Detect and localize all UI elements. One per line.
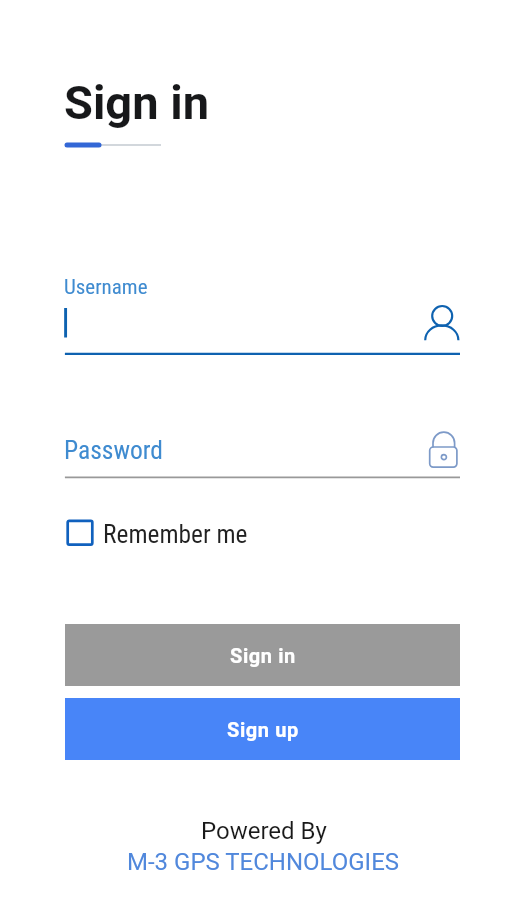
button[interactable]: M-3 GPS TECHNOLOGIES (127, 848, 400, 876)
button[interactable]: Sign in (65, 624, 460, 686)
staticText: Username (64, 275, 148, 300)
button[interactable]: Show password (425, 428, 465, 474)
button[interactable]: Password field (63, 425, 463, 481)
staticText: Password (64, 435, 164, 465)
button[interactable]: Remember me (57, 516, 258, 552)
staticText: Sign in (230, 644, 296, 667)
staticText: Powered By (201, 817, 327, 845)
staticText: Remember me (103, 519, 248, 549)
button[interactable]: Username field (63, 268, 463, 356)
staticText: Sign up (227, 718, 299, 741)
button[interactable]: Sign up (65, 698, 460, 760)
button[interactable]: Account (420, 298, 466, 344)
staticText: Sign in (64, 75, 210, 130)
